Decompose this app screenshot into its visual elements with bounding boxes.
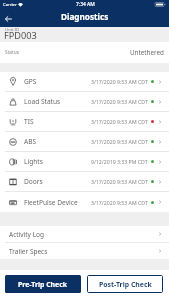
staticText: GPS (24, 77, 37, 86)
button[interactable]: Activity Log (0, 226, 169, 242)
staticText: Lights (24, 157, 43, 166)
staticText: Load Status (24, 97, 61, 106)
button[interactable]: Load Status (0, 92, 169, 111)
staticText: TIS (24, 117, 34, 126)
staticText: Trailer Specs (9, 247, 48, 256)
staticText: 3/17/2020 9:53 AM CDT (91, 199, 148, 206)
staticText: Diagnostics (61, 11, 109, 22)
staticText: FleetPulse Device (24, 198, 78, 207)
staticText: 3/17/2020 9:53 AM CDT (91, 98, 148, 105)
staticText: 7:34 AM (76, 1, 95, 8)
button[interactable]: GPS (0, 72, 169, 91)
staticText: Unit ID (5, 26, 20, 32)
staticText: Post-Trip Check (99, 280, 152, 289)
staticText: Status (5, 49, 20, 56)
staticText: ABS (24, 137, 37, 146)
button[interactable]: Post-Trip Check (87, 275, 163, 293)
button[interactable]: Back (0, 13, 16, 27)
button[interactable]: Trailer Specs (0, 243, 169, 259)
staticText: Doors (24, 177, 43, 186)
staticText: 3/17/2020 9:53 AM CDT (91, 178, 148, 185)
button[interactable]: ABS (0, 132, 169, 151)
staticText: 3/17/2020 9:53 AM CDT (91, 118, 148, 125)
button[interactable]: TIS (0, 112, 169, 131)
staticText: 9/12/2019 3:33 PM CDT (91, 158, 148, 165)
button[interactable]: Doors (0, 172, 169, 191)
button[interactable]: FleetPulse Device (0, 192, 169, 212)
staticText: Activity Log (9, 230, 44, 239)
button[interactable]: Pre-Trip Check (5, 275, 81, 293)
button[interactable]: Lights (0, 152, 169, 171)
staticText: Untethered (130, 48, 164, 57)
staticText: FPD003 (4, 29, 37, 42)
staticText: 3/17/2020 9:53 AM CDT (91, 138, 148, 145)
staticText: Carrier (3, 2, 17, 8)
staticText: 3/17/2020 9:53 AM CDT (91, 78, 148, 85)
staticText: Pre-Trip Check (18, 280, 68, 289)
